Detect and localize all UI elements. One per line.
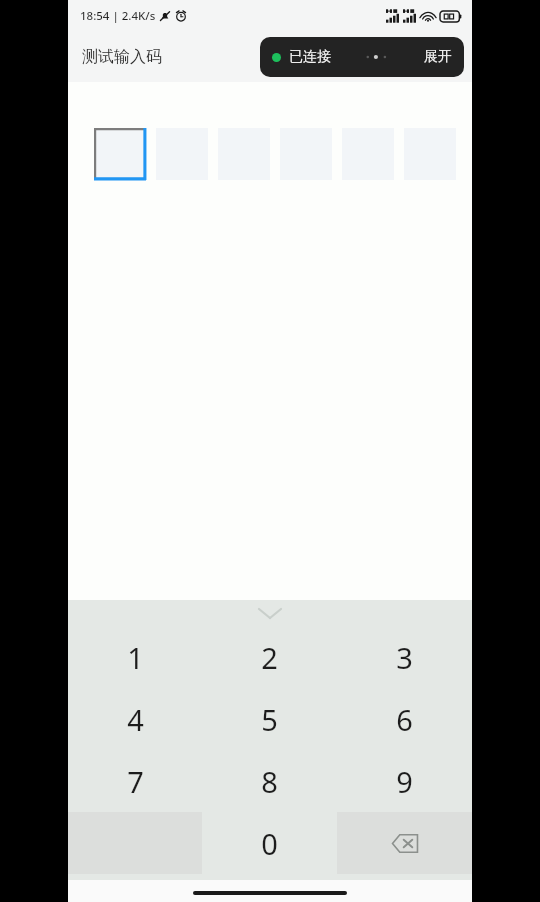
button[interactable]: Backspace [337,812,472,874]
button[interactable]: 5 [202,688,337,750]
button[interactable] [94,128,146,180]
button[interactable]: 9 [337,750,472,812]
button[interactable]: Collapse keyboard [250,604,290,622]
staticText: 展开 [424,48,452,66]
staticText: 测试输入码 [82,47,162,67]
button[interactable]: 2 [202,626,337,688]
staticText: 4 [127,700,144,739]
button[interactable]: 4 [68,688,202,750]
staticText: 6 [396,700,413,739]
button[interactable]: 6 [337,688,472,750]
button[interactable]: 3 [337,626,472,688]
staticText: 9 [396,762,413,801]
staticText: 2 [261,638,278,677]
button[interactable]: 1 [68,626,202,688]
button[interactable]: 0 [202,812,337,874]
staticText: 0 [261,824,278,863]
button[interactable]: 8 [202,750,337,812]
button[interactable]: 7 [68,750,202,812]
staticText: 7 [127,762,144,801]
staticText: 8 [261,762,278,801]
staticText: 18:54 | 2.4K/s [80,8,156,24]
staticText: 已连接 [289,48,331,66]
button[interactable]: 已连接 [260,37,464,77]
staticText: 3 [396,638,413,677]
staticText: 1 [127,638,144,677]
staticText: 5 [261,700,278,739]
